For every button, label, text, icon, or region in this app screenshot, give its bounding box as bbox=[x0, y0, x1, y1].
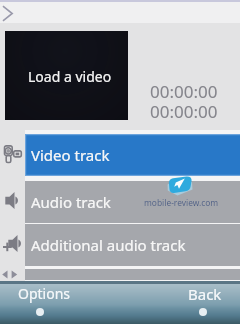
staticText: Additional audio track bbox=[31, 235, 186, 255]
button[interactable]: Video track bbox=[25, 134, 240, 176]
button[interactable]: Menu bbox=[1, 5, 15, 22]
staticText: mobile-review.com bbox=[144, 197, 219, 208]
staticText: Load a video bbox=[28, 67, 112, 86]
button[interactable]: Load a video bbox=[5, 31, 128, 120]
button[interactable]: Back bbox=[178, 284, 230, 324]
staticText: Audio track bbox=[31, 192, 111, 212]
staticText: 00:00:00 bbox=[150, 100, 218, 123]
staticText: Options bbox=[18, 284, 71, 303]
button[interactable]: Scroll horizontally bbox=[1, 270, 19, 279]
button[interactable]: Options bbox=[8, 284, 84, 324]
staticText: Back bbox=[188, 284, 222, 304]
staticText: 00:00:00 bbox=[150, 80, 218, 103]
button[interactable]: Additional audio track bbox=[25, 224, 240, 266]
staticText: Video track bbox=[31, 145, 110, 165]
button[interactable]: Audio track bbox=[25, 181, 240, 223]
